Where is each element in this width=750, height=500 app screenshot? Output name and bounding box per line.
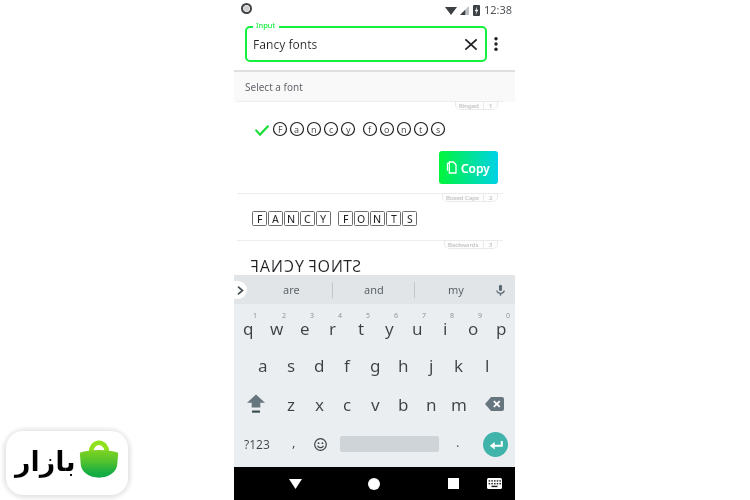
- staticText: 5: [366, 311, 371, 321]
- staticText: T: [343, 255, 352, 277]
- button[interactable]: Boxed Caps: [442, 193, 498, 202]
- staticText: 2: [489, 194, 493, 202]
- staticText: O: [317, 255, 330, 277]
- staticText: k: [454, 354, 464, 377]
- button[interactable]: my: [415, 275, 496, 304]
- staticText: Backwards: [448, 241, 479, 249]
- staticText: F: [278, 123, 283, 135]
- button[interactable]: h: [389, 346, 417, 384]
- button[interactable]: Ringed: [455, 101, 498, 110]
- button[interactable]: Home: [354, 467, 394, 500]
- staticText: t: [358, 317, 365, 340]
- staticText: a: [258, 354, 268, 377]
- button[interactable]: 8: [431, 308, 459, 346]
- button[interactable]: ?123: [234, 424, 280, 464]
- staticText: w: [270, 317, 284, 340]
- staticText: n: [401, 123, 407, 135]
- button[interactable]: c: [333, 385, 361, 423]
- button[interactable]: More options: [486, 34, 506, 54]
- button[interactable]: b: [389, 385, 417, 423]
- staticText: are: [283, 282, 300, 297]
- staticText: h: [398, 354, 409, 377]
- button[interactable]: m: [445, 385, 473, 423]
- button[interactable]: 2: [263, 308, 291, 346]
- button[interactable]: Backspace: [473, 385, 515, 423]
- staticText: S: [352, 255, 361, 277]
- button[interactable]: 3: [291, 308, 319, 346]
- button[interactable]: s: [277, 346, 305, 384]
- staticText: Input: [256, 20, 276, 30]
- button[interactable]: z: [277, 385, 305, 423]
- button[interactable]: ,: [280, 424, 307, 464]
- button[interactable]: n: [417, 385, 445, 423]
- staticText: C: [304, 212, 311, 226]
- staticText: Boxed Caps: [446, 194, 479, 202]
- button[interactable]: 7: [403, 308, 431, 346]
- button[interactable]: Shift: [234, 385, 277, 423]
- button[interactable]: v: [361, 385, 389, 423]
- button[interactable]: k: [445, 346, 473, 384]
- staticText: A: [259, 255, 270, 277]
- button[interactable]: 4: [319, 308, 347, 346]
- staticText: F: [257, 212, 263, 226]
- staticText: o: [384, 123, 390, 135]
- button[interactable]: and: [333, 275, 414, 304]
- staticText: and: [364, 282, 384, 297]
- button[interactable]: Enter: [483, 432, 508, 457]
- staticText: y: [385, 317, 394, 340]
- staticText: p: [496, 317, 507, 340]
- button[interactable]: are: [251, 275, 332, 304]
- button[interactable]: x: [305, 385, 333, 423]
- staticText: N: [373, 212, 382, 226]
- staticText: 8: [450, 311, 455, 321]
- staticText: 4: [338, 311, 343, 321]
- button[interactable]: Backwards: [444, 240, 498, 249]
- staticText: y: [346, 123, 351, 135]
- staticText: N: [270, 255, 283, 277]
- button[interactable]: 6: [375, 308, 403, 346]
- staticText: s: [436, 123, 441, 135]
- button[interactable]: 1: [234, 308, 263, 346]
- staticText: 3: [310, 311, 315, 321]
- staticText: my: [448, 282, 464, 297]
- staticText: Copy: [461, 160, 490, 176]
- button[interactable]: Recents: [433, 467, 473, 500]
- button[interactable]: f: [333, 346, 361, 384]
- button[interactable]: d: [305, 346, 333, 384]
- staticText: ?123: [244, 436, 270, 452]
- staticText: v: [371, 393, 380, 416]
- button[interactable]: Expand suggestions: [222, 281, 247, 299]
- staticText: N: [287, 212, 296, 226]
- staticText: S: [407, 212, 413, 226]
- button[interactable]: Clear: [461, 34, 481, 54]
- staticText: b: [398, 393, 409, 416]
- staticText: i: [443, 317, 448, 340]
- staticText: 7: [422, 311, 427, 321]
- button[interactable]: Fancy fonts: [245, 26, 487, 62]
- button[interactable]: 9: [459, 308, 487, 346]
- staticText: c: [329, 123, 334, 135]
- button[interactable]: .: [445, 424, 471, 464]
- staticText: x: [315, 393, 324, 416]
- button[interactable]: j: [417, 346, 445, 384]
- staticText: t: [419, 123, 423, 135]
- staticText: e: [300, 317, 310, 340]
- button[interactable]: Voice input: [486, 275, 514, 304]
- staticText: g: [370, 354, 381, 377]
- button[interactable]: g: [361, 346, 389, 384]
- button[interactable]: Copy: [439, 151, 498, 184]
- staticText: z: [287, 393, 295, 416]
- staticText: o: [468, 317, 479, 340]
- button[interactable]: Keyboard: [477, 467, 511, 500]
- button[interactable]: 5: [347, 308, 375, 346]
- button[interactable]: Emoji: [307, 424, 334, 464]
- staticText: r: [329, 317, 337, 340]
- button[interactable]: Back: [275, 467, 315, 500]
- button[interactable]: l: [473, 346, 501, 384]
- staticText: c: [343, 393, 352, 416]
- button[interactable]: a: [248, 346, 277, 384]
- staticText: C: [283, 255, 294, 277]
- button[interactable]: 0: [487, 308, 515, 346]
- staticText: F: [250, 255, 259, 277]
